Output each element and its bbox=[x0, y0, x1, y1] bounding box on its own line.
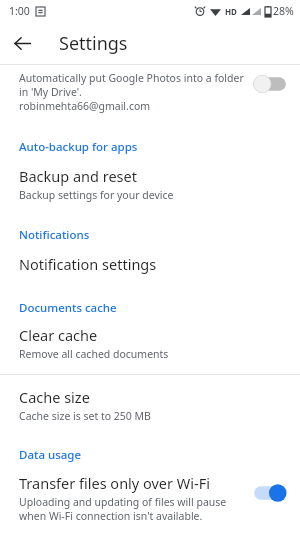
staticText: Backup and reset bbox=[19, 166, 137, 186]
staticText: 28% bbox=[273, 4, 294, 18]
staticText: Uploading and updating of files will pau… bbox=[19, 495, 227, 509]
staticText: Settings bbox=[59, 31, 128, 56]
staticText: Clear cache bbox=[19, 325, 98, 345]
staticText: Auto-backup for apps bbox=[19, 139, 138, 155]
button[interactable]: Automatically put Google Photos into a f… bbox=[0, 65, 300, 117]
staticText: Cache size is set to 250 MB bbox=[19, 409, 151, 423]
staticText: Documents cache bbox=[19, 300, 117, 316]
button[interactable]: Transfer files only over Wi-Fi bbox=[0, 473, 300, 523]
staticText: Automatically put Google Photos into a f… bbox=[19, 71, 244, 85]
staticText: Data usage bbox=[19, 447, 82, 463]
button[interactable]: Backup and reset bbox=[0, 166, 300, 202]
button[interactable]: Back bbox=[6, 27, 38, 59]
staticText: 1:00 bbox=[9, 4, 30, 18]
staticText: in 'My Drive'. bbox=[19, 85, 82, 99]
staticText: Cache size bbox=[19, 387, 90, 407]
staticText: Notification settings bbox=[19, 254, 157, 274]
button[interactable]: Toggle off bbox=[252, 73, 288, 95]
staticText: Notifications bbox=[19, 227, 90, 243]
staticText: HD bbox=[225, 6, 237, 17]
staticText: robinmehta66@gmail.com bbox=[19, 99, 151, 113]
staticText: when Wi-Fi connection isn't available. bbox=[19, 509, 203, 523]
staticText: Remove all cached documents bbox=[19, 347, 169, 361]
button[interactable]: Cache size bbox=[0, 387, 300, 423]
button[interactable]: Toggle on bbox=[252, 482, 288, 504]
button[interactable]: Notification settings bbox=[0, 254, 300, 274]
button[interactable]: Clear cache bbox=[0, 325, 300, 361]
staticText: Transfer files only over Wi-Fi bbox=[19, 473, 210, 493]
staticText: Backup settings for your device bbox=[19, 188, 174, 202]
